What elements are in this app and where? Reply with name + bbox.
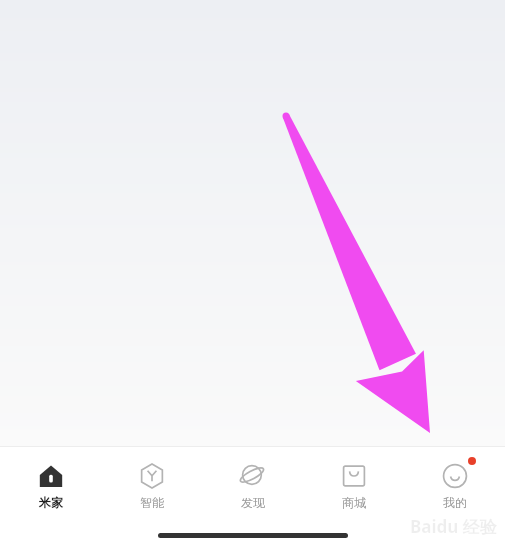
- button[interactable]: 我的: [404, 459, 505, 510]
- button[interactable]: 智能: [101, 459, 202, 510]
- staticText: 我的: [443, 495, 467, 510]
- button[interactable]: 米家: [0, 459, 101, 510]
- button[interactable]: 商城: [303, 459, 404, 510]
- staticText: 米家: [39, 495, 63, 510]
- staticText: 智能: [140, 495, 164, 510]
- button[interactable]: 发现: [202, 459, 303, 510]
- staticText: 发现: [241, 495, 265, 510]
- staticText: Baidu 经验: [410, 515, 497, 538]
- staticText: 商城: [342, 495, 366, 510]
